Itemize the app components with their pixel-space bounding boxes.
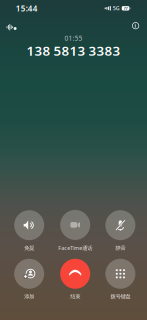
button[interactable]: Call info xyxy=(131,21,141,31)
staticText: 15:44 xyxy=(16,3,38,14)
staticText: FaceTime通话 xyxy=(58,244,92,251)
staticText: 拨号键盘 xyxy=(110,293,130,300)
staticText: 5G xyxy=(113,5,120,12)
staticText: 77 xyxy=(123,6,127,11)
staticText: i xyxy=(135,22,137,29)
staticText: 静音 xyxy=(115,245,125,251)
button[interactable]: 结束 xyxy=(52,260,98,299)
staticText: 结束 xyxy=(70,293,80,300)
button[interactable]: 免提 xyxy=(6,211,52,250)
staticText: 138 5813 3383 xyxy=(26,42,120,59)
button[interactable]: 拨号键盘 xyxy=(97,260,143,299)
button[interactable]: Live voicemail xyxy=(6,24,17,31)
button[interactable]: 添加 xyxy=(6,260,52,299)
staticText: 免提 xyxy=(24,245,34,251)
staticText: 01:55 xyxy=(64,34,82,43)
button[interactable]: 静音 xyxy=(97,211,143,250)
staticText: 添加 xyxy=(24,293,34,300)
button[interactable]: FaceTime通话 xyxy=(52,211,98,250)
